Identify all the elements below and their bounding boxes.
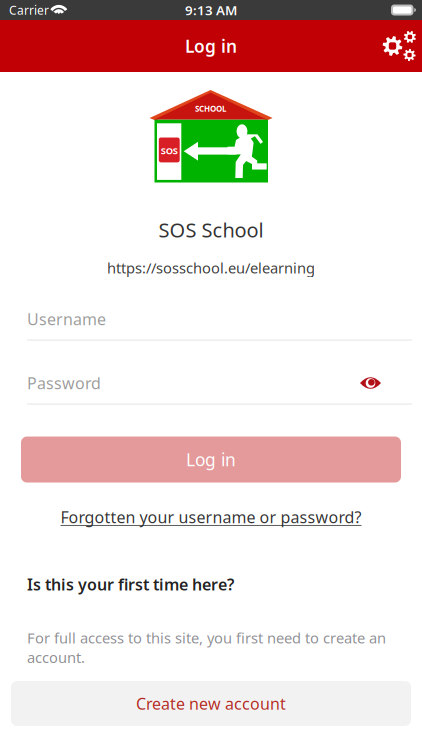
staticText: Carrier <box>9 2 49 18</box>
staticText: 9:13 AM <box>185 1 237 19</box>
button[interactable]: Log in <box>21 436 401 482</box>
staticText: For full access to this site, you first … <box>27 628 386 667</box>
button[interactable]: Forgotten your username or password? <box>60 506 361 528</box>
staticText: SOS <box>161 144 178 157</box>
staticText: SOS School <box>158 216 263 243</box>
staticText: Log in <box>186 448 236 471</box>
button[interactable]: Settings <box>379 27 422 65</box>
staticText: Is this your first time here? <box>27 574 234 595</box>
staticText: Forgotten your username or password? <box>60 506 361 528</box>
button[interactable]: Create new account <box>11 681 411 726</box>
staticText: Create new account <box>136 693 286 714</box>
staticText: https://sosschool.eu/elearning <box>107 258 315 278</box>
staticText: SCHOOL <box>195 103 226 114</box>
staticText: Password <box>27 372 101 394</box>
button[interactable]: Show password <box>360 376 381 390</box>
staticText: Username <box>27 308 106 330</box>
staticText: Log in <box>185 34 237 57</box>
